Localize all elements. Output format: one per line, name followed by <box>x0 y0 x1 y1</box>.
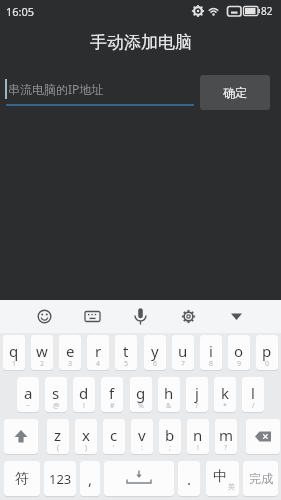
button[interactable]: l <box>242 377 264 412</box>
button[interactable]: . <box>178 461 200 496</box>
button[interactable]: 完成 <box>243 461 278 496</box>
button[interactable]: 123 <box>44 461 76 496</box>
button[interactable] <box>104 461 174 496</box>
staticText: 6 <box>153 359 158 369</box>
button[interactable]: 中 <box>206 461 239 496</box>
staticText: ; <box>169 443 171 453</box>
staticText: ? <box>195 401 199 411</box>
button[interactable]: 符 <box>4 461 40 496</box>
button[interactable]: e <box>59 335 81 370</box>
button[interactable]: , <box>80 461 100 496</box>
button[interactable]: v <box>131 419 153 454</box>
staticText: ) <box>85 443 88 453</box>
staticText: t <box>123 341 129 361</box>
staticText: f <box>109 383 115 403</box>
button[interactable]: o <box>228 335 250 370</box>
staticText: : <box>141 443 143 453</box>
staticText: h <box>164 383 174 403</box>
button[interactable]: n <box>187 419 209 454</box>
staticText: p <box>262 341 272 361</box>
button[interactable]: w <box>31 335 53 370</box>
button[interactable]: f <box>101 377 123 412</box>
staticText: . <box>187 469 192 489</box>
button[interactable]: s <box>45 377 67 412</box>
button[interactable]: 确定 <box>200 75 270 110</box>
staticText: 英 <box>228 482 235 491</box>
button[interactable] <box>225 300 281 333</box>
staticText: y <box>151 341 159 361</box>
staticText: ~ <box>26 401 31 411</box>
button[interactable] <box>169 300 225 333</box>
button[interactable]: x <box>75 419 97 454</box>
button[interactable]: i <box>200 335 222 370</box>
staticText: g <box>136 383 146 403</box>
staticText: l <box>251 383 255 403</box>
button[interactable]: j <box>186 377 208 412</box>
staticText: ( <box>57 443 60 453</box>
staticText: j <box>195 383 199 403</box>
button[interactable]: c <box>103 419 125 454</box>
staticText: 9 <box>237 359 242 369</box>
button[interactable] <box>4 419 38 454</box>
staticText: 手动添加电脑 <box>90 32 192 53</box>
staticText: 中 <box>213 468 227 486</box>
button[interactable]: h <box>158 377 180 412</box>
button[interactable]: d <box>73 377 95 412</box>
staticText: s <box>52 383 60 403</box>
staticText: , <box>88 469 93 489</box>
staticText: x <box>82 425 90 445</box>
staticText: 串流电脑的IP地址 <box>8 81 104 97</box>
staticText: ! <box>197 443 199 453</box>
staticText: 2 <box>40 359 45 369</box>
button[interactable]: p <box>256 335 278 370</box>
button[interactable]: y <box>144 335 166 370</box>
staticText: 7 <box>181 359 186 369</box>
staticText: i <box>209 341 213 361</box>
staticText: m <box>219 425 234 445</box>
button[interactable]: g <box>130 377 152 412</box>
staticText: 5 <box>124 359 129 369</box>
staticText: k <box>221 383 230 403</box>
staticText: # <box>110 401 115 411</box>
staticText: n <box>193 425 203 445</box>
staticText: 4 <box>96 359 101 369</box>
button[interactable]: m <box>215 419 237 454</box>
staticText: 1 <box>12 359 17 369</box>
staticText: ' <box>113 443 115 453</box>
staticText: 3 <box>68 359 73 369</box>
button[interactable] <box>57 300 113 333</box>
staticText: 0 <box>265 359 270 369</box>
staticText: 8 <box>209 359 214 369</box>
button[interactable]: u <box>172 335 194 370</box>
staticText: o <box>234 341 244 361</box>
staticText: z <box>54 425 62 445</box>
staticText: ? <box>224 443 228 453</box>
staticText: 确定 <box>223 85 247 100</box>
button[interactable] <box>113 300 169 333</box>
staticText: r <box>95 341 102 361</box>
staticText: c <box>110 425 118 445</box>
staticText: % <box>138 401 144 411</box>
button[interactable]: t <box>115 335 137 370</box>
staticText: d <box>79 383 89 403</box>
button[interactable] <box>246 419 280 454</box>
staticText: & <box>166 401 172 411</box>
staticText: b <box>165 425 175 445</box>
staticText: v <box>138 425 146 445</box>
button[interactable]: k <box>214 377 236 412</box>
staticText: 123 <box>49 470 72 488</box>
staticText: a <box>24 383 33 403</box>
staticText: / <box>252 401 255 411</box>
button[interactable]: b <box>159 419 181 454</box>
button[interactable] <box>0 300 57 333</box>
staticText: @ <box>53 401 60 411</box>
staticText: 16:05 <box>6 4 35 19</box>
button[interactable]: q <box>3 335 25 370</box>
button[interactable]: a <box>17 377 39 412</box>
staticText: u <box>178 341 188 361</box>
staticText: 82 <box>261 4 273 18</box>
staticText: * <box>223 401 227 411</box>
button[interactable]: r <box>87 335 109 370</box>
button[interactable]: z <box>47 419 69 454</box>
staticText: 完成 <box>249 471 273 486</box>
